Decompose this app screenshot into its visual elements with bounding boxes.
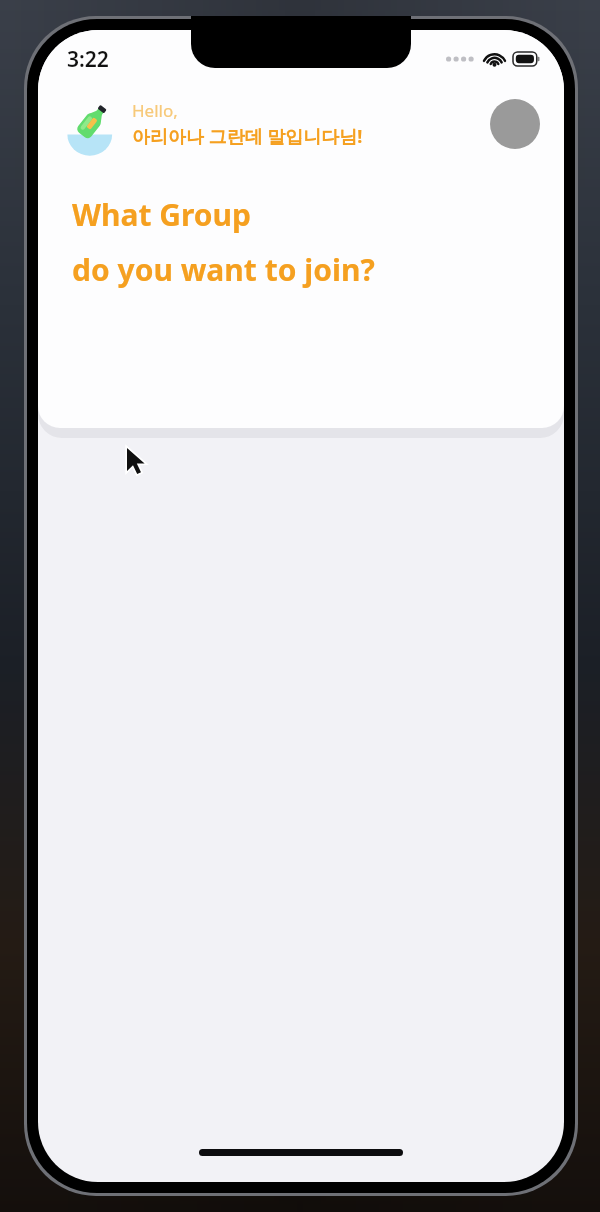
staticText: Hello, bbox=[132, 99, 178, 122]
staticText: do you want to join? bbox=[72, 249, 375, 290]
staticText: 아리아나 그란데 말입니다님! bbox=[132, 124, 363, 149]
button[interactable]: Profile bbox=[490, 99, 540, 149]
staticText: 3:22 bbox=[67, 45, 109, 74]
staticText: What Group bbox=[72, 194, 252, 235]
